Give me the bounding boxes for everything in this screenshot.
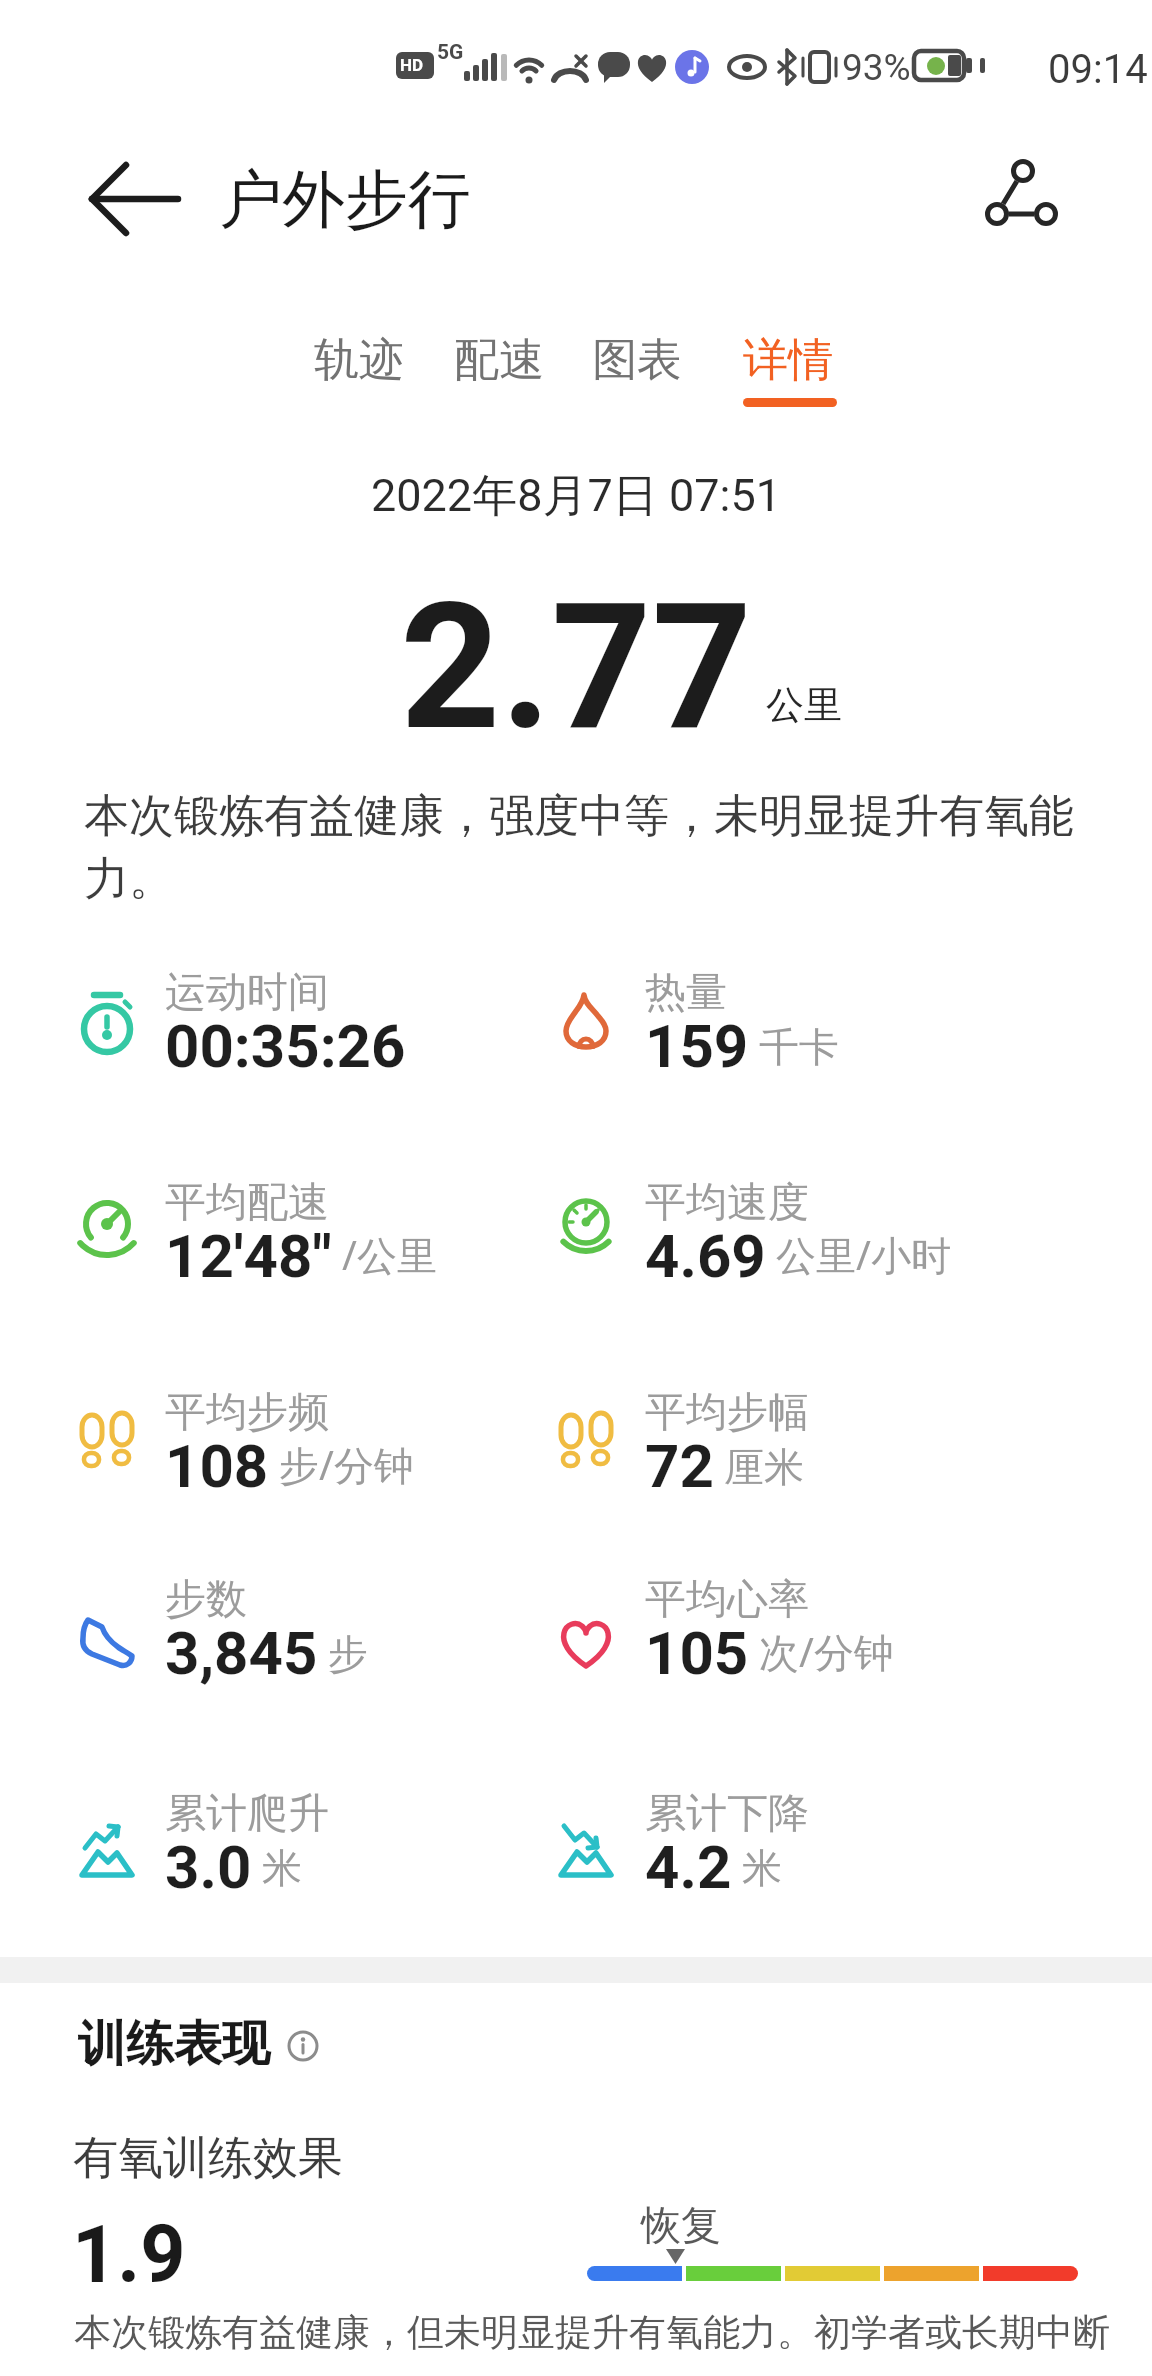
staticText: 米 [742, 1843, 782, 1893]
staticText: 训练表现 [78, 2014, 270, 2074]
button[interactable]: 轨迹 [304, 320, 416, 420]
staticText: 平均心率 [645, 1574, 809, 1626]
staticText: 热量 [645, 967, 727, 1019]
staticText: 108 [165, 1431, 269, 1501]
staticText: 步数 [165, 1574, 247, 1626]
staticText: 图表 [592, 332, 682, 389]
staticText: 3,845 [165, 1618, 318, 1688]
staticText: 本次锻炼有益健康，但未明显提升有氧能力。初学者或长期中断 [74, 2309, 1110, 2356]
staticText: 12'48" [165, 1221, 332, 1291]
staticText: 本次锻炼有益健康，强度中等，未明显提升有氧能力。 [84, 788, 1074, 907]
staticText: 2022年8月7日 07:51 [371, 468, 781, 525]
button[interactable] [288, 2031, 318, 2061]
staticText: 米 [262, 1843, 302, 1893]
staticText: 09:14 [1048, 46, 1148, 93]
staticText: 公里 [766, 681, 842, 729]
staticText: 累计下降 [645, 1788, 809, 1840]
staticText: 平均配速 [165, 1177, 329, 1229]
staticText: 公里/小时 [776, 1227, 951, 1282]
staticText: 00:35:26 [165, 1011, 406, 1081]
staticText: 159 [645, 1011, 749, 1081]
staticText: 次/分钟 [759, 1624, 894, 1679]
staticText: 72 [645, 1431, 714, 1501]
staticText: 1.9 [72, 2209, 186, 2302]
staticText: 4.69 [645, 1221, 766, 1291]
staticText: 有氧训练效果 [73, 2130, 343, 2187]
staticText: 105 [645, 1618, 749, 1688]
staticText: 平均速度 [645, 1177, 809, 1229]
staticText: 配速 [454, 332, 544, 389]
staticText: 厘米 [724, 1442, 804, 1492]
staticText: 步 [328, 1629, 368, 1679]
staticText: 4.2 [645, 1832, 732, 1902]
staticText: 恢复 [641, 2200, 721, 2250]
staticText: 详情 [743, 332, 833, 389]
staticText: 93% [842, 46, 911, 89]
staticText: 步/分钟 [279, 1437, 414, 1492]
staticText: 5G [437, 40, 464, 65]
button[interactable] [965, 140, 1075, 250]
button[interactable]: 图表 [582, 320, 694, 420]
staticText: 2.77 [400, 565, 753, 770]
staticText: 运动时间 [165, 967, 329, 1019]
staticText: 平均步幅 [645, 1387, 809, 1439]
button[interactable]: 详情 [733, 320, 845, 420]
button[interactable] [80, 155, 190, 245]
staticText: 户外步行 [219, 160, 471, 239]
staticText: 千卡 [759, 1022, 839, 1072]
staticText: 3.0 [165, 1832, 252, 1902]
staticText: 轨迹 [314, 332, 404, 389]
staticText: /公里 [342, 1227, 437, 1282]
staticText: 累计爬升 [165, 1788, 329, 1840]
staticText: 平均步频 [165, 1387, 329, 1439]
button[interactable]: 配速 [444, 320, 556, 420]
staticText: HD [400, 55, 424, 75]
